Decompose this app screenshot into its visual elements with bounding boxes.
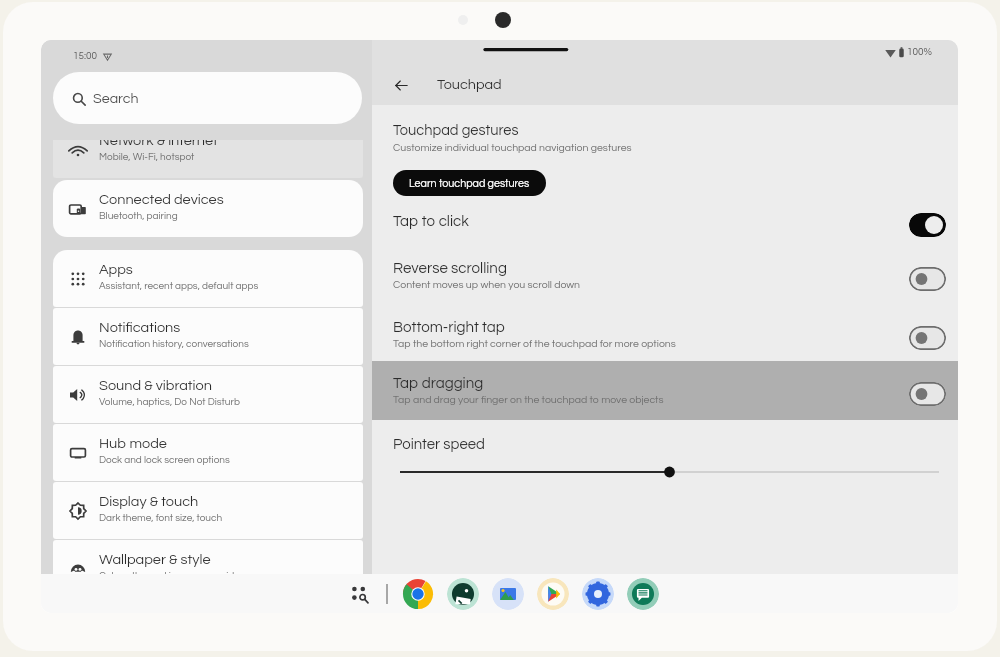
staticText: Apps: [99, 262, 133, 277]
staticText: Customize individual touchpad navigation…: [393, 142, 632, 153]
button[interactable]: Apps: [53, 250, 363, 307]
button[interactable]: Photos: [492, 578, 524, 610]
button[interactable]: Turn off: [909, 213, 946, 237]
staticText: Content moves up when you scroll down: [393, 279, 581, 290]
staticText: Display & touch: [99, 494, 199, 509]
button[interactable]: Android Studio: [447, 578, 479, 610]
button[interactable]: Turn on: [909, 382, 946, 406]
staticText: Tap dragging: [393, 376, 484, 392]
button[interactable]: Back: [386, 70, 416, 100]
staticText: 15:00: [73, 51, 98, 61]
staticText: Pointer speed: [393, 437, 485, 452]
button[interactable]: All apps: [345, 579, 375, 609]
staticText: Notifications: [99, 320, 181, 335]
staticText: Touchpad: [437, 77, 502, 92]
staticText: Network & internet: [99, 140, 218, 148]
staticText: Hub mode: [99, 436, 167, 451]
staticText: Mobile, Wi-Fi, hotspot: [99, 152, 195, 162]
button[interactable]: Messages: [627, 578, 659, 610]
button[interactable]: Settings: [582, 578, 614, 610]
button[interactable]: Search: [53, 72, 362, 124]
button[interactable]: Bottom-right tap: [372, 314, 958, 355]
staticText: Search: [93, 91, 139, 106]
staticText: Connected devices: [99, 192, 224, 207]
staticText: Colors, themed icons, app grid: [99, 571, 235, 574]
staticText: Learn touchpad gestures: [409, 178, 530, 189]
staticText: Notification history, conversations: [99, 339, 249, 349]
button[interactable]: Tap to click: [372, 207, 958, 237]
staticText: 100%: [907, 47, 932, 57]
button[interactable]: Learn touchpad gestures: [393, 170, 546, 196]
button[interactable]: Play Store: [537, 578, 569, 610]
staticText: Dock and lock screen options: [99, 455, 230, 465]
staticText: Reverse scrolling: [393, 261, 507, 277]
button[interactable]: Display & touch: [53, 482, 363, 539]
button[interactable]: Turn on: [909, 326, 946, 350]
button[interactable]: Sound & vibration: [53, 366, 363, 423]
button[interactable]: Wallpaper & style: [53, 540, 363, 574]
staticText: Sound & vibration: [99, 378, 212, 393]
staticText: Bluetooth, pairing: [99, 211, 178, 221]
button[interactable]: Tap dragging: [372, 361, 958, 420]
button[interactable]: Chrome: [402, 578, 434, 610]
staticText: Bottom-right tap: [393, 320, 505, 336]
button[interactable]: Turn on: [909, 267, 946, 291]
staticText: Tap the bottom right corner of the touch…: [393, 338, 676, 349]
button[interactable]: Network & internet: [53, 140, 363, 178]
staticText: Assistant, recent apps, default apps: [99, 281, 259, 291]
button[interactable]: Hub mode: [53, 424, 363, 481]
staticText: Volume, haptics, Do Not Disturb: [99, 397, 240, 407]
staticText: Dark theme, font size, touch: [99, 513, 223, 523]
staticText: Tap to click: [393, 214, 469, 230]
button[interactable]: Connected devices: [53, 180, 363, 237]
button[interactable]: Notifications: [53, 308, 363, 365]
button[interactable]: Reverse scrolling: [372, 255, 958, 296]
staticText: Tap and drag your finger on the touchpad…: [393, 394, 664, 405]
staticText: Touchpad gestures: [393, 123, 519, 138]
staticText: Wallpaper & style: [99, 552, 211, 567]
